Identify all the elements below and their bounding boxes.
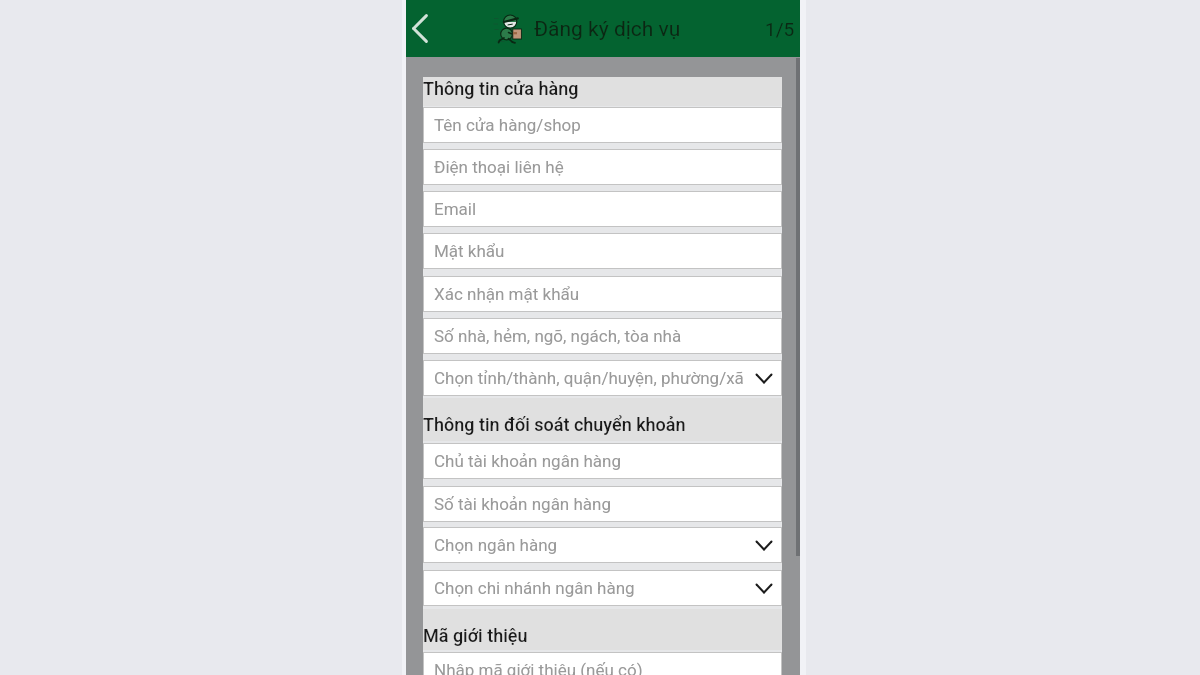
staticText: Điện thoại liên hệ [434,157,564,177]
staticText: Chọn chi nhánh ngân hàng [434,578,635,598]
staticText: Số nhà, hẻm, ngõ, ngách, tòa nhà [434,326,682,346]
button[interactable]: Chủ tài khoản ngân hàng [423,443,782,479]
staticText: Mã giới thiệu [423,625,528,646]
button[interactable]: Open dropdown [746,527,782,563]
staticText: Email [434,199,477,219]
button[interactable]: Nhập mã giới thiệu (nếu có) [423,652,782,675]
button[interactable]: Xác nhận mật khẩu [423,276,782,312]
staticText: Tên cửa hàng/shop [434,115,581,135]
button[interactable]: Thông tin đối soát chuyển khoản [423,398,782,441]
button[interactable]: Điện thoại liên hệ [423,149,782,185]
button[interactable]: Open dropdown [746,570,782,606]
staticText: Nhập mã giới thiệu (nếu có) [434,660,643,675]
button[interactable]: Thông tin cửa hàng [423,77,782,106]
button[interactable]: Chọn chi nhánh ngân hàng [423,570,782,606]
button[interactable]: Mã giới thiệu [423,609,782,650]
staticText: Thông tin cửa hàng [423,78,579,99]
staticText: Chọn tỉnh/thành, quận/huyện, phường/xã [434,368,744,388]
button[interactable]: Số nhà, hẻm, ngõ, ngách, tòa nhà [423,318,782,354]
staticText: Chủ tài khoản ngân hàng [434,451,622,471]
button[interactable]: Số tài khoản ngân hàng [423,486,782,522]
staticText: Xác nhận mật khẩu [434,284,580,304]
staticText: Mật khẩu [434,241,505,261]
button[interactable]: Tên cửa hàng/shop [423,107,782,143]
staticText: Số tài khoản ngân hàng [434,494,612,514]
staticText: 1/5 [765,18,795,40]
staticText: Chọn ngân hàng [434,535,558,555]
button[interactable]: Email [423,191,782,227]
staticText: Đăng ký dịch vụ [534,17,681,42]
button[interactable]: Back [406,0,434,57]
button[interactable]: Chọn ngân hàng [423,527,782,563]
button[interactable]: Mật khẩu [423,233,782,269]
button[interactable]: Chọn tỉnh/thành, quận/huyện, phường/xã [423,360,782,396]
staticText: Thông tin đối soát chuyển khoản [423,414,686,435]
button[interactable]: Open dropdown [746,360,782,396]
